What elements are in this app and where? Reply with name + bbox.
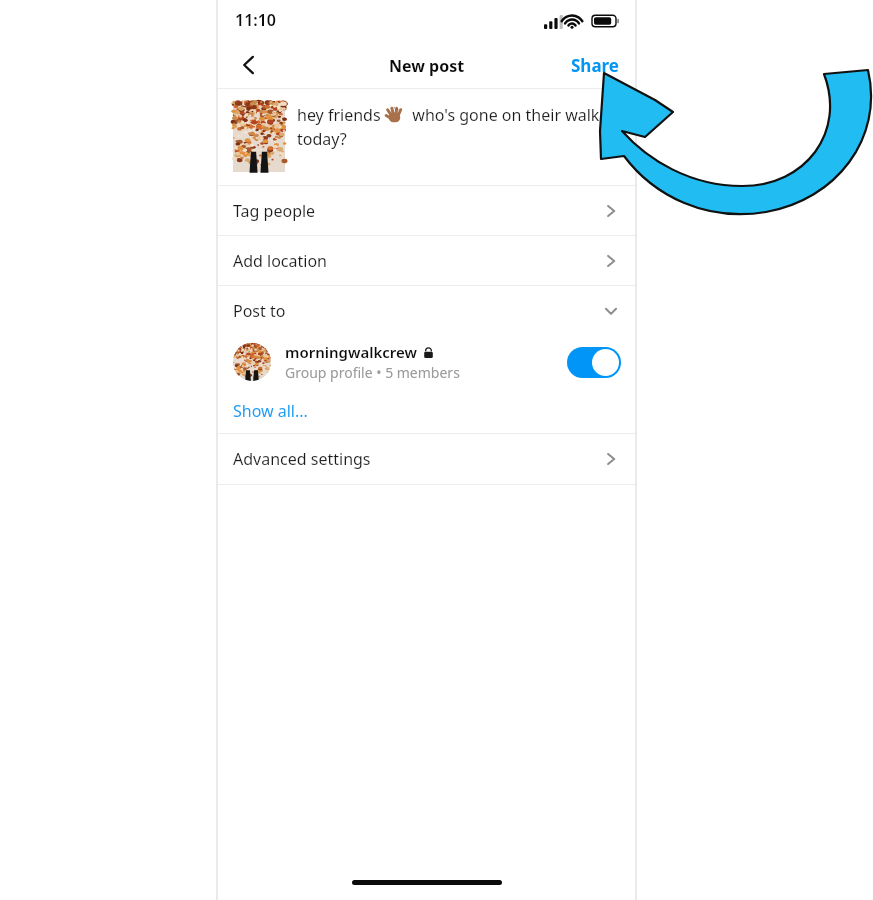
button[interactable]: Back — [231, 47, 267, 83]
staticText: Add location — [233, 250, 328, 272]
button[interactable]: hey friends — [217, 89, 636, 185]
staticText: New post — [389, 55, 465, 77]
button[interactable]: morningwalkcrew — [217, 335, 636, 389]
staticText: Advanced settings — [233, 448, 371, 470]
staticText: Group profile • 5 members — [285, 363, 460, 382]
button[interactable]: Share — [555, 46, 636, 85]
staticText: who's gone on their walk — [404, 104, 600, 126]
staticText: morningwalkcrew — [285, 342, 417, 362]
staticText: Share — [571, 54, 620, 77]
staticText: Show all... — [233, 400, 308, 422]
staticText: hey friends — [297, 104, 385, 126]
staticText: today? — [297, 128, 347, 150]
button[interactable]: Add location — [217, 236, 636, 285]
button[interactable]: Post to — [217, 286, 636, 335]
button[interactable]: Tag people — [217, 186, 636, 235]
staticText: 11:10 — [235, 9, 277, 31]
button[interactable]: Advanced settings — [217, 434, 636, 484]
staticText: Post to — [233, 300, 286, 322]
button[interactable]: Post to morningwalkcrew toggle — [567, 347, 621, 378]
staticText: Tag people — [233, 200, 316, 222]
button[interactable]: Show all... — [217, 389, 636, 433]
